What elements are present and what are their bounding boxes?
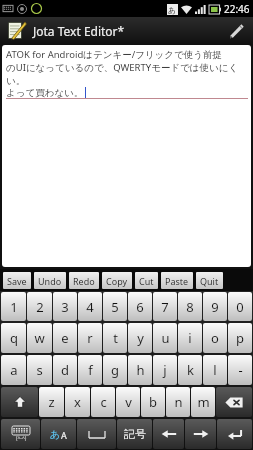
button[interactable]: b	[141, 387, 165, 417]
staticText: 7	[161, 298, 169, 316]
button[interactable]: f	[78, 355, 102, 385]
button[interactable]: Enter	[217, 419, 252, 449]
button[interactable]: u	[153, 323, 177, 353]
button[interactable]: m	[191, 387, 215, 417]
button[interactable]: -	[228, 355, 252, 385]
staticText: Paste	[165, 275, 189, 287]
button[interactable]: 1	[1, 292, 26, 321]
button[interactable]: Cut	[135, 272, 158, 289]
button[interactable]: 3	[53, 292, 77, 321]
staticText: k	[187, 361, 194, 379]
staticText: 6	[136, 298, 144, 316]
staticText: Save	[7, 275, 27, 287]
button[interactable]: Backspace	[216, 387, 252, 417]
button[interactable]: l	[203, 355, 227, 385]
staticText: Cut	[139, 275, 154, 287]
staticText: f	[88, 361, 93, 379]
staticText: w	[34, 329, 45, 347]
staticText: 9	[211, 298, 219, 316]
button[interactable]: h	[128, 355, 152, 385]
staticText: 8	[186, 298, 194, 316]
staticText: z	[48, 393, 55, 411]
button[interactable]: a	[1, 355, 26, 385]
button[interactable]: r	[78, 323, 102, 353]
staticText: -	[238, 361, 243, 379]
staticText: 4	[86, 298, 94, 316]
staticText: l	[213, 361, 217, 379]
button[interactable]: p	[228, 323, 252, 353]
staticText: Undo	[38, 275, 62, 287]
button[interactable]: Input mode	[41, 419, 76, 449]
button[interactable]: s	[27, 355, 52, 385]
button[interactable]: o	[203, 323, 227, 353]
button[interactable]: Left	[153, 419, 184, 449]
button[interactable]: Paste	[161, 272, 193, 289]
button[interactable]: 5	[103, 292, 127, 321]
staticText: あ	[168, 5, 177, 15]
staticText: j	[163, 361, 167, 379]
staticText: c	[100, 393, 107, 411]
button[interactable]: z	[39, 387, 64, 417]
button[interactable]: 6	[128, 292, 152, 321]
button[interactable]: Quit	[196, 272, 223, 289]
button[interactable]: Right	[185, 419, 216, 449]
button[interactable]: w	[27, 323, 52, 353]
button[interactable]: Shift	[1, 387, 38, 417]
staticText: 1	[10, 298, 18, 316]
button[interactable]: Jota Text Editor*	[0, 17, 253, 44]
staticText: Redo	[73, 275, 95, 287]
staticText: y	[137, 329, 144, 347]
staticText: v	[125, 393, 132, 411]
button[interactable]: k	[178, 355, 202, 385]
button[interactable]: c	[91, 387, 115, 417]
button[interactable]: 9	[203, 292, 227, 321]
staticText: 2	[36, 298, 44, 316]
button[interactable]: Save	[3, 272, 31, 289]
button[interactable]: d	[53, 355, 77, 385]
button[interactable]: 7	[153, 292, 177, 321]
staticText: x	[74, 393, 81, 411]
staticText: m	[197, 393, 210, 411]
staticText: Jota Text Editor*	[33, 23, 125, 39]
staticText: s	[36, 361, 43, 379]
button[interactable]: t	[103, 323, 127, 353]
button[interactable]: Redo	[69, 272, 99, 289]
staticText: A	[61, 429, 67, 441]
button[interactable]: Switch keyboard	[1, 419, 40, 449]
staticText: g	[111, 361, 119, 379]
button[interactable]: y	[128, 323, 152, 353]
staticText: b	[149, 393, 157, 411]
button[interactable]: 8	[178, 292, 202, 321]
button[interactable]: Copy	[102, 272, 132, 289]
button[interactable]: g	[103, 355, 127, 385]
staticText: 3	[61, 298, 69, 316]
staticText: ATOK for Androidはテンキー/フリックで使う前提 のUIになってい…	[6, 48, 239, 87]
button[interactable]: n	[166, 387, 190, 417]
staticText: d	[61, 361, 69, 379]
button[interactable]: q	[1, 323, 26, 353]
button[interactable]: 0	[228, 292, 252, 321]
button[interactable]: Undo	[34, 272, 66, 289]
staticText: u	[161, 329, 170, 347]
button[interactable]: ATOK for Androidはテンキー/フリックで使う前提 のUIになってい…	[2, 45, 251, 267]
staticText: (^-^)	[16, 435, 27, 442]
button[interactable]: e	[53, 323, 77, 353]
button[interactable]: Edit	[219, 17, 253, 44]
staticText: n	[174, 393, 183, 411]
staticText: 22:46	[224, 2, 250, 16]
staticText: 0	[236, 298, 244, 316]
button[interactable]: 4	[78, 292, 102, 321]
button[interactable]: j	[153, 355, 177, 385]
staticText: p	[236, 329, 244, 347]
button[interactable]: Space	[77, 419, 116, 449]
staticText: r	[87, 329, 93, 347]
staticText: 記号	[124, 427, 146, 441]
button[interactable]: x	[65, 387, 90, 417]
button[interactable]: 2	[27, 292, 52, 321]
staticText: Quit	[200, 275, 219, 287]
button[interactable]: Symbols	[117, 419, 152, 449]
staticText: a	[10, 361, 18, 379]
button[interactable]: v	[116, 387, 140, 417]
staticText: Copy	[106, 275, 128, 287]
button[interactable]: i	[178, 323, 202, 353]
